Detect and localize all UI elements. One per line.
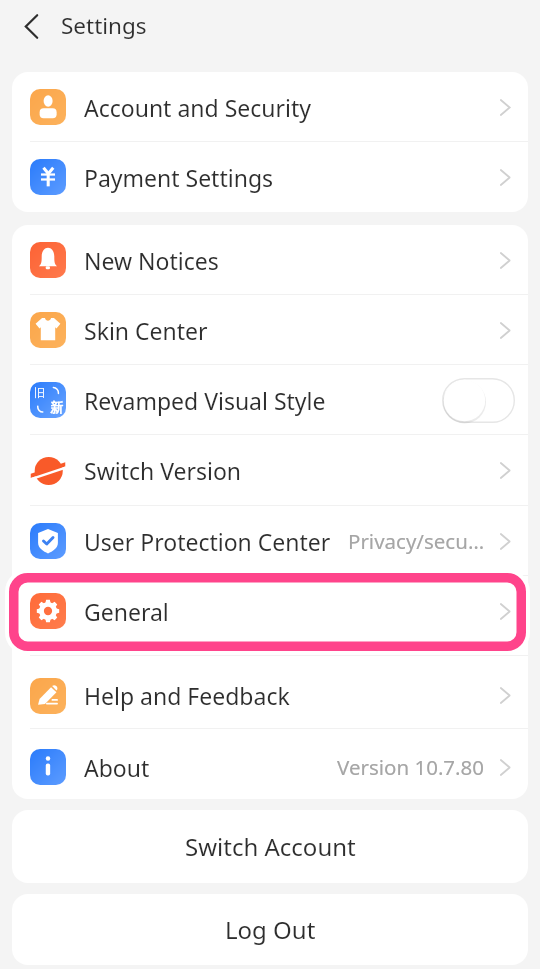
button[interactable]: Help and Feedback	[12, 659, 528, 732]
staticText: 新	[50, 399, 63, 415]
button[interactable]: Skin Center	[12, 295, 528, 365]
staticText: New Notices	[84, 245, 219, 276]
other: Open	[499, 759, 512, 776]
staticText: Privacy/secu…	[348, 527, 485, 555]
button[interactable]: Switch Version	[12, 435, 528, 506]
staticText: Help and Feedback	[84, 680, 290, 711]
button[interactable]: User Protection Center	[12, 506, 528, 576]
other: Open	[499, 252, 512, 269]
button[interactable]: Payment Settings	[12, 142, 528, 212]
staticText: Version 10.7.80	[337, 753, 485, 781]
button[interactable]: General	[12, 571, 528, 651]
staticText: Skin Center	[84, 315, 208, 346]
button[interactable]: Account and Security	[12, 72, 528, 142]
other: Open	[499, 462, 512, 479]
other: Open	[499, 533, 512, 550]
button[interactable]: New Notices	[12, 225, 528, 295]
staticText: Payment Settings	[84, 162, 274, 193]
button[interactable]: About	[12, 732, 528, 799]
staticText: Switch Account	[185, 830, 356, 863]
other: Open	[499, 687, 512, 704]
staticText: About	[84, 752, 150, 783]
other: Open	[499, 603, 512, 620]
other: Open	[499, 99, 512, 116]
other: Open	[499, 322, 512, 339]
staticText: 旧	[34, 386, 45, 400]
staticText: Settings	[61, 10, 147, 41]
staticText: User Protection Center	[84, 526, 331, 557]
staticText: Revamped Visual Style	[84, 385, 326, 416]
staticText: Log Out	[225, 913, 316, 946]
staticText: General	[84, 596, 169, 627]
button[interactable]: Revamped Visual Style toggle	[442, 378, 515, 423]
button[interactable]: Switch Account	[12, 810, 528, 883]
staticText: Switch Version	[84, 455, 242, 486]
button[interactable]: Back	[7, 2, 55, 50]
staticText: Account and Security	[84, 92, 311, 123]
button[interactable]: 旧	[12, 365, 528, 435]
other: Open	[499, 169, 512, 186]
button[interactable]: Log Out	[12, 894, 528, 965]
